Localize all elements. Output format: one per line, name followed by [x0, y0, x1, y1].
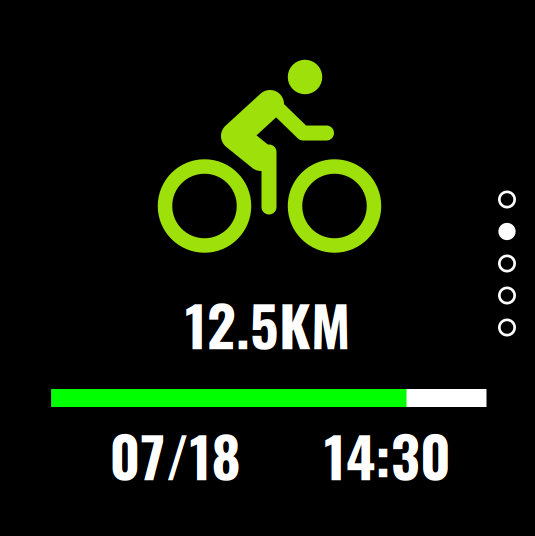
staticText: 07/18	[109, 413, 240, 496]
staticText: 14:30	[324, 413, 451, 496]
staticText: 12.5KM	[185, 282, 350, 365]
